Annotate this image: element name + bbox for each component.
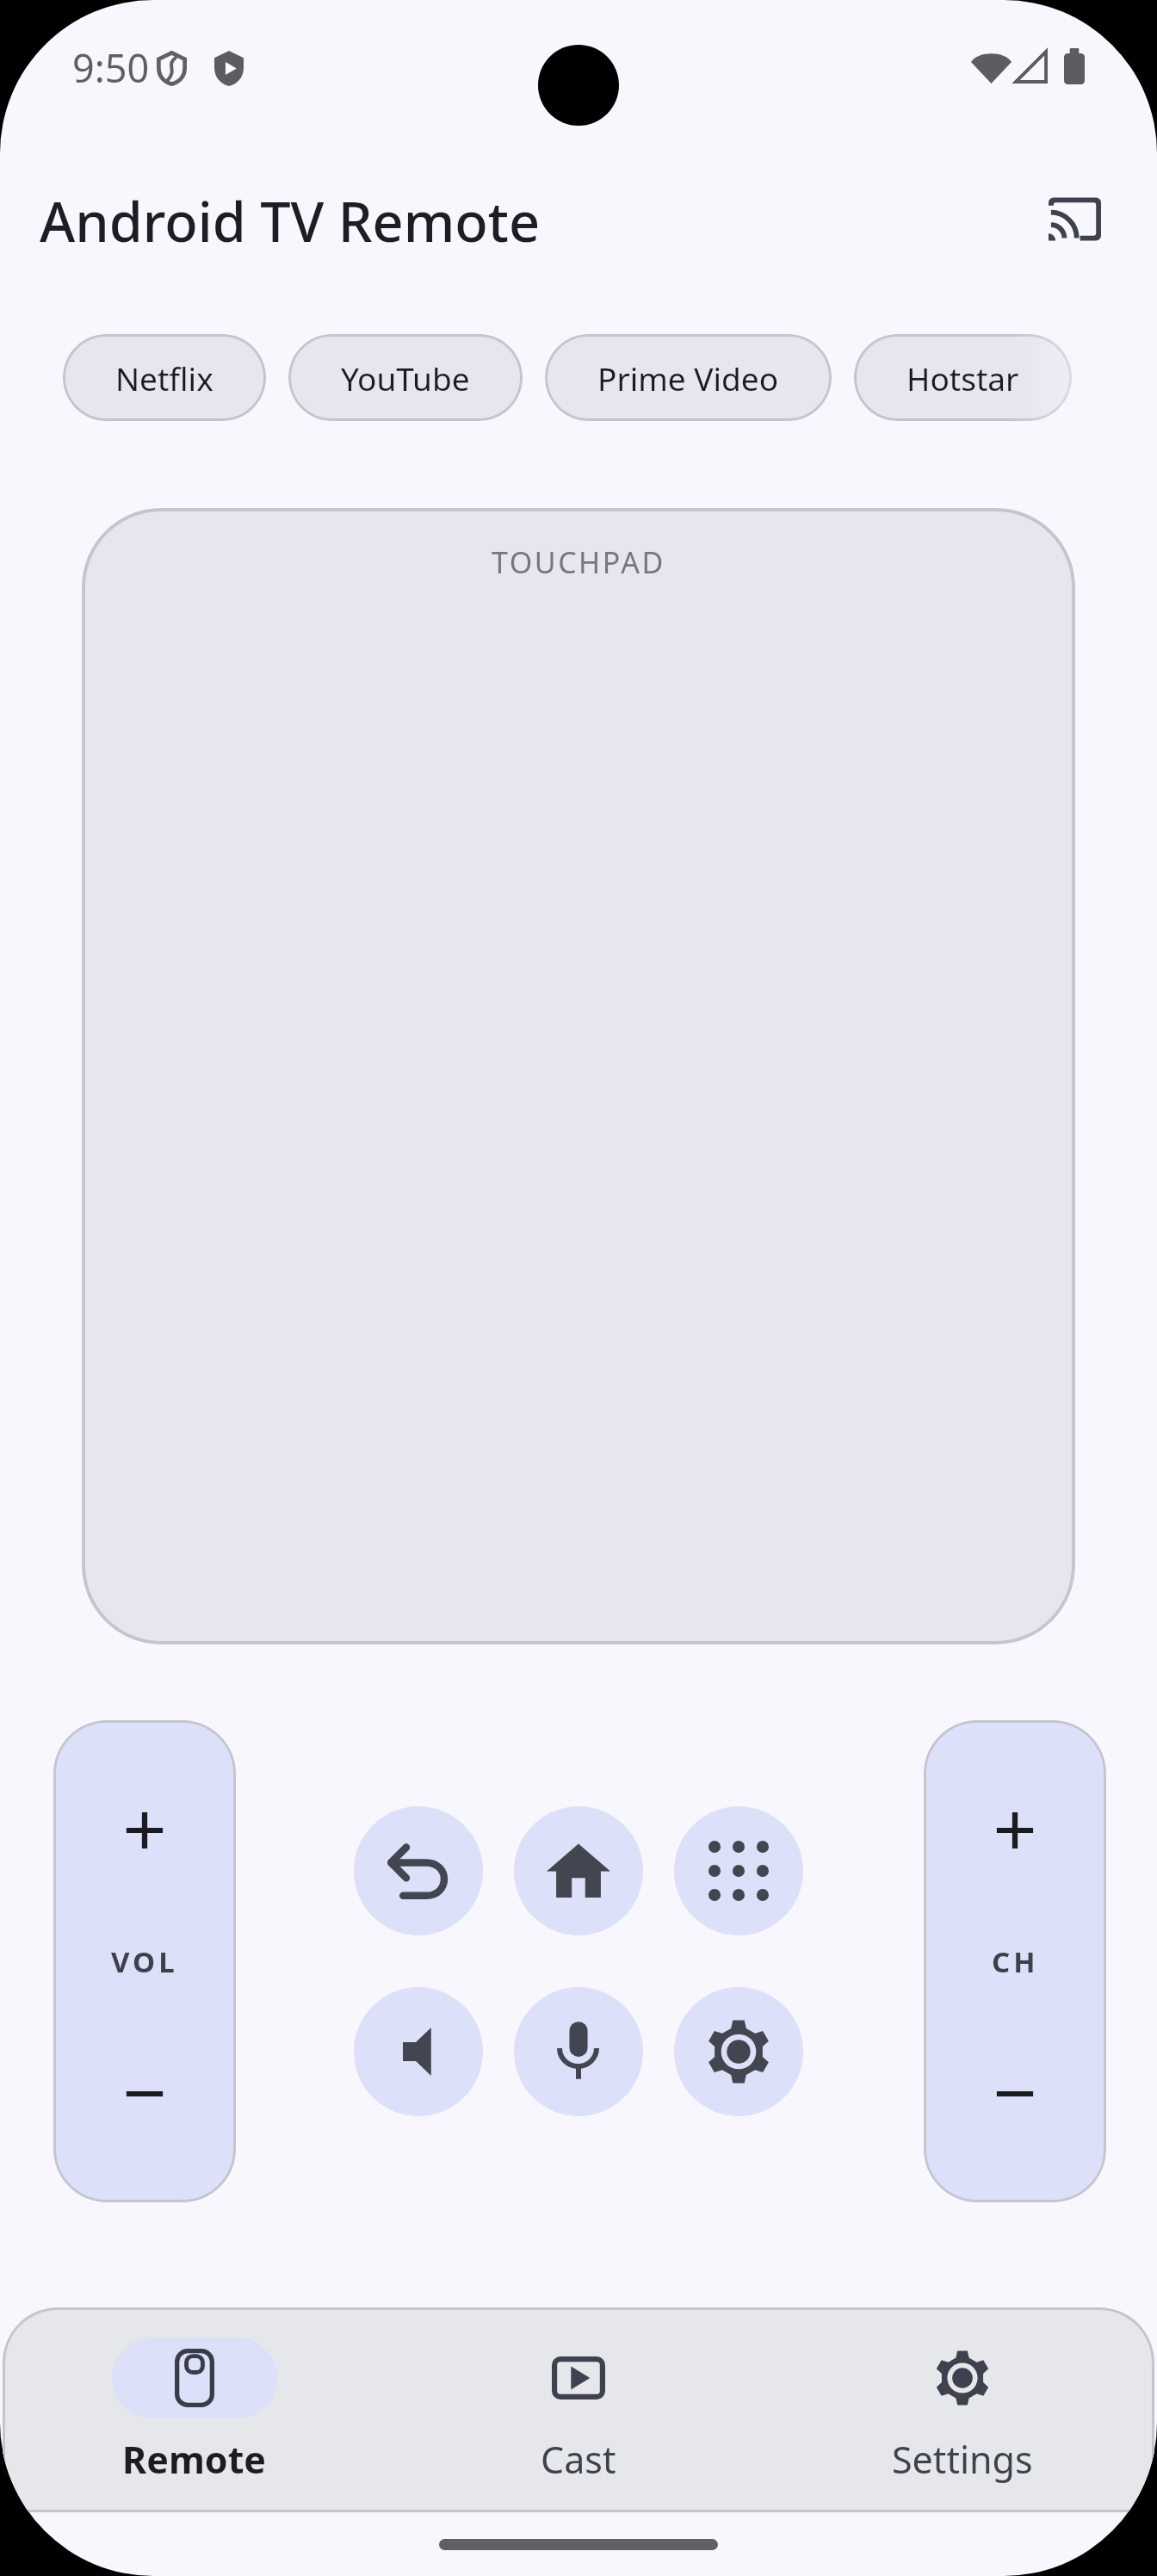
button[interactable]: Home <box>514 1806 643 1935</box>
staticText: TOUCHPAD <box>492 542 665 582</box>
button[interactable]: Netflix <box>63 334 266 421</box>
button[interactable]: Cast <box>1023 167 1126 270</box>
staticText: Remote <box>122 2434 267 2485</box>
button[interactable]: Hotstar <box>854 334 1072 421</box>
button[interactable]: VOL <box>53 1720 236 2202</box>
staticText: Prime Video <box>597 356 779 399</box>
button[interactable]: Voice search <box>514 1987 643 2116</box>
staticText: 9:50 <box>72 41 150 94</box>
button[interactable]: Settings <box>674 1987 803 2116</box>
button[interactable]: TOUCHPAD <box>82 508 1075 1644</box>
button[interactable]: Back <box>354 1806 483 1935</box>
staticText: Settings <box>892 2434 1033 2485</box>
staticText: CH <box>992 1942 1039 1981</box>
button[interactable]: CH <box>924 1720 1106 2202</box>
staticText: VOL <box>111 1942 178 1981</box>
staticText: Netflix <box>115 356 213 399</box>
button[interactable]: YouTube <box>288 334 523 421</box>
button[interactable]: Remote <box>3 2307 387 2512</box>
button[interactable]: Cast <box>387 2307 770 2512</box>
button[interactable]: Mute <box>354 1987 483 2116</box>
staticText: Android TV Remote <box>40 184 541 258</box>
staticText: Cast <box>541 2434 616 2485</box>
button[interactable]: Prime Video <box>545 334 832 421</box>
staticText: YouTube <box>341 356 470 399</box>
button[interactable]: Apps <box>674 1806 803 1935</box>
button[interactable]: Settings <box>770 2307 1154 2512</box>
staticText: Hotstar <box>906 356 1019 399</box>
